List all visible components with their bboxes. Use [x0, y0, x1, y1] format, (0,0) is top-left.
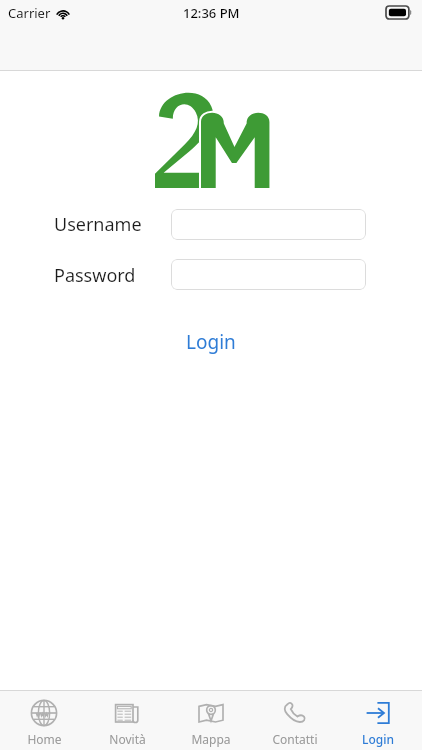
button[interactable]: Username field — [171, 209, 366, 240]
staticText: Mappa — [191, 731, 231, 747]
staticText: Home — [27, 731, 62, 747]
staticText: Carrier — [8, 4, 51, 22]
button[interactable]: Mappa — [171, 690, 251, 750]
button[interactable]: Contatti — [255, 690, 335, 750]
staticText: 12:36 PM — [183, 4, 240, 22]
staticText: Novità — [109, 731, 146, 747]
button[interactable]: Password field — [171, 259, 366, 290]
staticText: Login — [362, 731, 394, 747]
button[interactable]: Login — [166, 325, 256, 359]
staticText: Password — [54, 263, 136, 288]
staticText: Contatti — [272, 731, 318, 747]
button[interactable]: Home — [4, 690, 84, 750]
staticText: Username — [54, 212, 142, 237]
staticText: Login — [186, 329, 236, 355]
button[interactable]: Novità — [87, 690, 167, 750]
button[interactable]: Login — [338, 690, 418, 750]
